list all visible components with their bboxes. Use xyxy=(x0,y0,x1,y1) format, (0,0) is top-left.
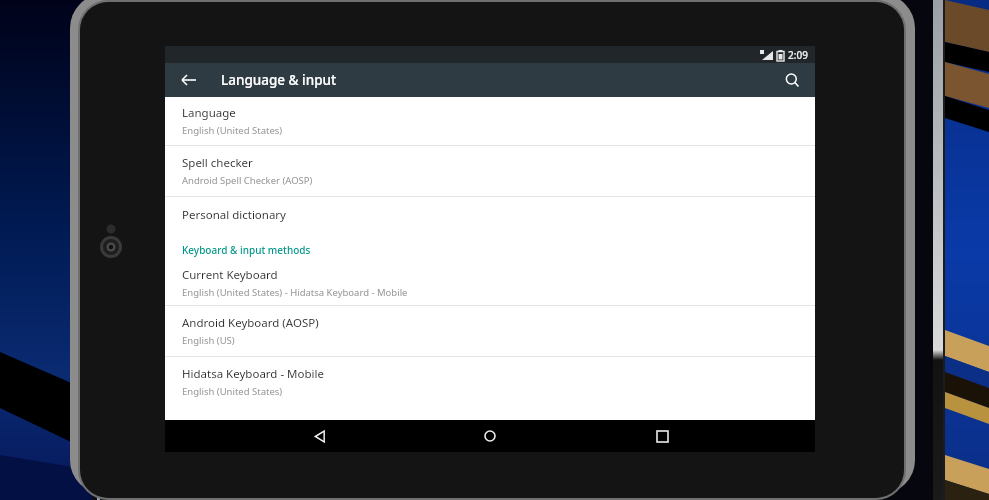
staticText: Current Keyboard xyxy=(182,267,278,283)
button[interactable]: Spell checker xyxy=(165,146,815,196)
staticText: Personal dictionary xyxy=(182,207,286,223)
button[interactable]: Personal dictionary xyxy=(165,197,815,233)
staticText: Android Spell Checker (AOSP) xyxy=(182,174,313,187)
staticText: 2:09 xyxy=(788,48,808,62)
staticText: English (United States) xyxy=(182,124,283,137)
staticText: English (United States) - Hidatsa Keyboa… xyxy=(182,286,408,299)
staticText: Language xyxy=(182,105,236,121)
button[interactable]: Current Keyboard xyxy=(165,261,815,305)
button[interactable]: Home xyxy=(472,420,508,452)
staticText: Language & input xyxy=(221,71,337,89)
staticText: Android Keyboard (AOSP) xyxy=(182,315,319,331)
button[interactable]: Back xyxy=(301,420,337,452)
staticText: English (US) xyxy=(182,334,235,347)
button[interactable]: Hidatsa Keyboard - Mobile xyxy=(165,357,815,407)
button[interactable]: Language xyxy=(165,97,815,145)
button[interactable]: Back xyxy=(173,64,205,96)
staticText: English (United States) xyxy=(182,385,283,398)
staticText: Spell checker xyxy=(182,155,253,171)
button[interactable]: Search xyxy=(777,65,807,95)
button[interactable]: Recent apps xyxy=(644,420,680,452)
button[interactable]: Android Keyboard (AOSP) xyxy=(165,306,815,356)
staticText: Hidatsa Keyboard - Mobile xyxy=(182,366,324,382)
staticText: Keyboard & input methods xyxy=(182,243,311,257)
